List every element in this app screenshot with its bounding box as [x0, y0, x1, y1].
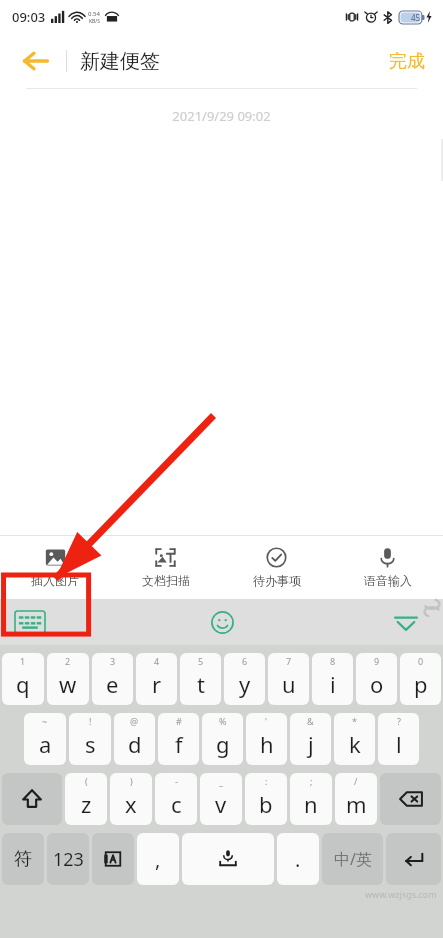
staticText: : — [265, 775, 268, 787]
staticText: z — [81, 789, 92, 819]
button[interactable]: # — [158, 713, 199, 765]
button[interactable]: Space and voice input — [182, 833, 274, 885]
button[interactable]: ' — [246, 713, 287, 765]
staticText: 新建便签 — [80, 49, 160, 74]
staticText: ; — [310, 775, 313, 787]
staticText: 0.54 — [88, 10, 100, 18]
staticText: 6 — [242, 655, 248, 667]
button[interactable]: ( — [65, 773, 107, 825]
staticText: m — [346, 789, 367, 819]
staticText: 中/英 — [334, 848, 372, 870]
button[interactable]: 中/英 — [322, 833, 383, 885]
button[interactable]: 8 — [312, 653, 353, 705]
staticText: KB/S — [89, 18, 100, 25]
button[interactable]: . — [277, 833, 319, 885]
staticText: % — [219, 715, 227, 727]
staticText: . — [295, 846, 301, 873]
staticText: c — [171, 789, 182, 819]
staticText: i — [330, 669, 336, 699]
button[interactable]: Backspace — [380, 773, 441, 825]
button[interactable]: Hide keyboard — [387, 603, 425, 641]
button[interactable]: ) — [110, 773, 152, 825]
staticText: v — [215, 789, 227, 819]
staticText: a — [39, 729, 52, 759]
staticText: w — [59, 669, 77, 699]
staticText: 09:03 — [12, 8, 46, 26]
button[interactable]: , — [137, 833, 179, 885]
staticText: ? — [397, 715, 401, 727]
button[interactable]: : — [245, 773, 287, 825]
button[interactable]: 3 — [92, 653, 133, 705]
staticText: o — [370, 669, 384, 699]
button[interactable]: / — [335, 773, 377, 825]
button[interactable]: 文档扫描 — [110, 536, 221, 599]
staticText: # — [176, 715, 182, 727]
staticText: h — [260, 729, 274, 759]
staticText: 45 — [411, 12, 421, 23]
staticText: s — [85, 729, 96, 759]
button[interactable]: ; — [290, 773, 332, 825]
staticText: 8 — [330, 655, 336, 667]
staticText: 完成 — [389, 50, 425, 73]
staticText: n — [304, 789, 318, 819]
button[interactable]: 插入图片 — [0, 536, 110, 599]
staticText: * — [352, 715, 357, 727]
staticText: 插入图片 — [31, 573, 79, 588]
staticText: 待办事项 — [253, 573, 301, 588]
button[interactable]: Back — [14, 39, 58, 83]
staticText: & — [307, 715, 314, 727]
staticText: 语音输入 — [364, 573, 412, 588]
button[interactable]: 完成 — [379, 42, 435, 81]
staticText: b — [259, 789, 273, 819]
button[interactable]: 7 — [268, 653, 309, 705]
staticText: t — [197, 669, 205, 699]
button[interactable]: 符 — [2, 833, 44, 885]
button[interactable]: ~ — [24, 713, 66, 765]
staticText: ' — [265, 715, 268, 727]
staticText: - — [175, 775, 178, 787]
button[interactable]: Keyboard — [10, 607, 50, 637]
staticText: 2 — [65, 655, 71, 667]
staticText: f — [175, 729, 183, 759]
staticText: g — [216, 729, 230, 759]
button[interactable]: Shift — [2, 773, 62, 825]
staticText: ~ — [42, 715, 48, 727]
staticText: 4 — [154, 655, 160, 667]
staticText: 符 — [14, 848, 32, 871]
staticText: 文档扫描 — [142, 573, 190, 588]
staticText: 123 — [53, 847, 84, 872]
staticText: 7 — [286, 655, 292, 667]
button[interactable]: 2 — [47, 653, 89, 705]
staticText: k — [349, 729, 361, 759]
button[interactable]: @ — [114, 713, 155, 765]
button[interactable]: - — [155, 773, 197, 825]
button[interactable]: 9 — [356, 653, 397, 705]
button[interactable]: 语音输入 — [332, 536, 443, 599]
staticText: / — [354, 775, 358, 787]
button[interactable]: & — [290, 713, 331, 765]
staticText: j — [308, 729, 314, 759]
button[interactable]: _ — [200, 773, 242, 825]
button[interactable]: % — [202, 713, 243, 765]
button[interactable]: 5 — [180, 653, 221, 705]
staticText: u — [282, 669, 296, 699]
staticText: x — [125, 789, 137, 819]
button[interactable]: 0 — [400, 653, 441, 705]
button[interactable]: 4 — [136, 653, 177, 705]
button[interactable]: 1 — [2, 653, 44, 705]
button[interactable]: ! — [69, 713, 111, 765]
button[interactable]: 6 — [224, 653, 265, 705]
staticText: 9 — [374, 655, 380, 667]
button[interactable]: 123 — [47, 833, 89, 885]
button[interactable]: ? — [378, 713, 419, 765]
staticText: , — [155, 846, 161, 873]
button[interactable]: Emoji — [205, 605, 239, 639]
staticText: q — [16, 669, 30, 699]
button[interactable]: Enter — [386, 833, 441, 885]
button[interactable]: 待办事项 — [221, 536, 332, 599]
staticText: ( — [85, 775, 88, 787]
staticText: _ — [219, 775, 223, 787]
button[interactable]: Input language — [92, 833, 134, 885]
staticText: 1 — [20, 655, 26, 667]
button[interactable]: * — [334, 713, 375, 765]
